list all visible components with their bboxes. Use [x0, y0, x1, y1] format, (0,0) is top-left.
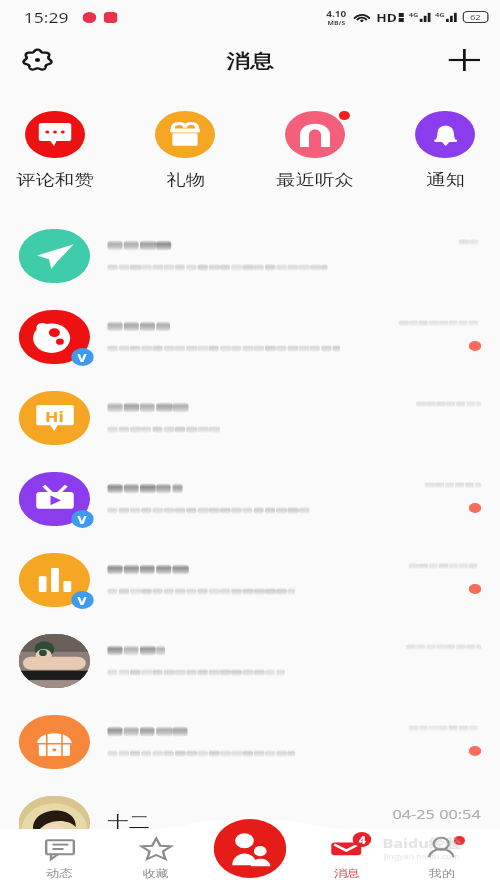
staticText: MB/S: [327, 19, 346, 26]
button[interactable]: [0, 620, 500, 701]
button[interactable]: Add friend: [214, 819, 286, 878]
staticText: 4: [359, 833, 366, 847]
staticText: 礼物: [166, 170, 205, 190]
button[interactable]: 收藏: [107, 829, 204, 889]
staticText: 4G: [409, 11, 419, 19]
button[interactable]: 礼物: [142, 111, 227, 190]
button[interactable]: 4: [299, 829, 394, 889]
button[interactable]: Settings: [12, 40, 62, 80]
staticText: 通知: [426, 170, 465, 190]
button[interactable]: Hi: [0, 377, 500, 458]
staticText: V: [77, 593, 87, 608]
staticText: 消息: [334, 867, 360, 880]
staticText: 62: [470, 12, 481, 22]
staticText: V: [77, 350, 87, 365]
staticText: 收藏: [142, 867, 169, 880]
button[interactable]: [0, 215, 500, 296]
staticText: 十二: [107, 812, 150, 833]
staticText: 评论和赞: [16, 170, 94, 190]
button[interactable]: 动态: [11, 829, 108, 889]
staticText: Baidu经验: [382, 834, 461, 852]
staticText: 4G: [435, 11, 445, 19]
staticText: 我的: [429, 867, 455, 880]
button[interactable]: 评论和赞: [12, 111, 97, 190]
staticText: 4.10: [326, 8, 346, 19]
button[interactable]: V: [0, 458, 500, 539]
staticText: jingyan.baidu.com: [384, 852, 460, 862]
staticText: HD: [376, 10, 398, 25]
button[interactable]: V: [0, 539, 500, 620]
button[interactable]: Add: [439, 40, 489, 80]
button[interactable]: 十二: [0, 782, 500, 863]
staticText: V: [77, 512, 87, 527]
button[interactable]: 我的: [394, 829, 489, 889]
button[interactable]: 最近听众: [272, 111, 357, 190]
staticText: Hi: [45, 407, 64, 426]
button[interactable]: V: [0, 296, 500, 377]
staticText: 04-25 00:54: [392, 805, 481, 823]
button[interactable]: 通知: [402, 111, 487, 190]
staticText: 15:29: [24, 8, 69, 27]
staticText: 消息: [226, 50, 274, 74]
button[interactable]: [0, 701, 500, 782]
staticText: 最近听众: [276, 170, 354, 190]
staticText: 动态: [46, 867, 73, 880]
